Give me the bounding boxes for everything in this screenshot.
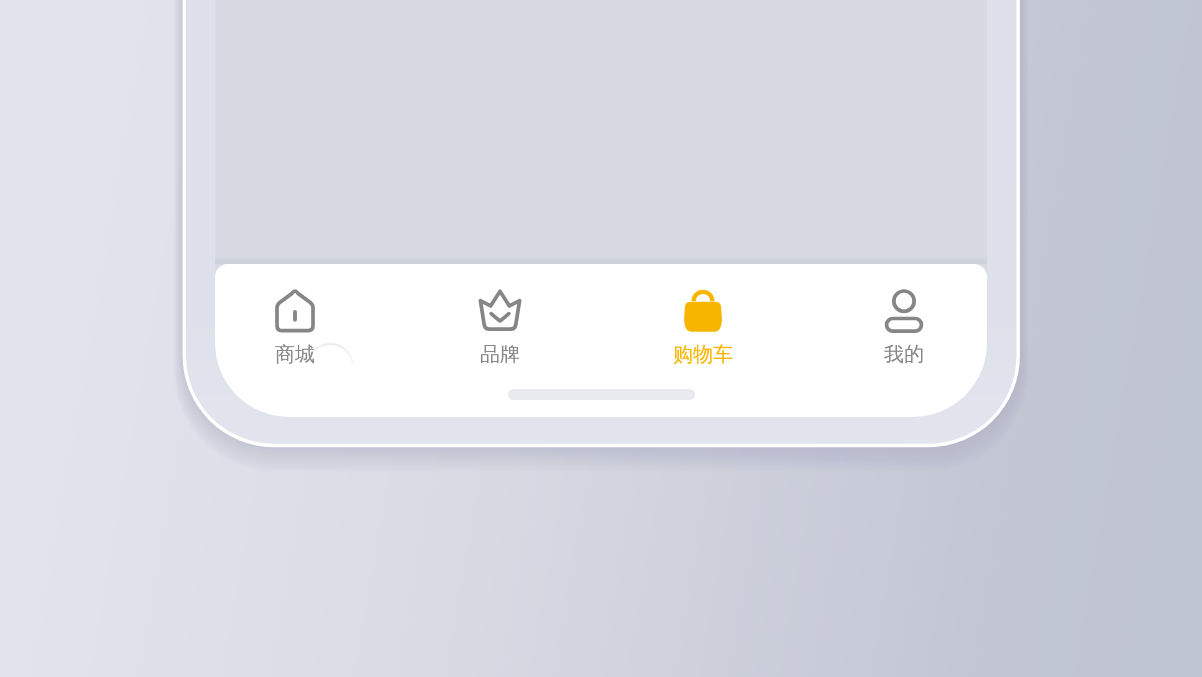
button[interactable]: Brands [467,285,533,387]
staticText: 我的 [884,342,924,367]
staticText: 品牌 [480,342,520,367]
button[interactable]: Profile [871,285,937,387]
staticText: 商城 [275,342,315,367]
button[interactable]: Shop [262,285,328,387]
staticText: 购物车 [673,342,733,367]
button[interactable]: Cart [670,285,736,387]
